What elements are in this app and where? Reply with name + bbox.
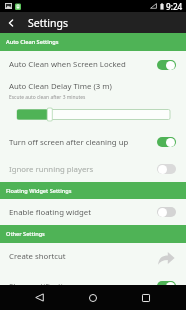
- button[interactable]: Create shortcut: [0, 243, 186, 269]
- staticText: Turn off screen after cleaning up: [9, 137, 153, 148]
- staticText: Auto Clean Delay Time (3 m): [9, 81, 112, 92]
- staticText: Ignore running players: [9, 164, 153, 175]
- button[interactable]: Home: [73, 285, 113, 310]
- button[interactable]: Show notification: [0, 273, 186, 299]
- button[interactable]: Enable floating widget: [0, 199, 186, 225]
- button[interactable]: Turn off screen after cleaning up: [0, 129, 186, 155]
- staticText: Create shortcut: [9, 251, 158, 262]
- button[interactable]: Auto Clean Delay Time (3 m): [0, 77, 186, 105]
- staticText: Enable floating widget: [9, 207, 153, 218]
- staticText: Auto Clean Settings: [6, 38, 59, 46]
- staticText: Floating Widget Settings: [6, 187, 72, 195]
- button[interactable]: Recent apps: [106, 285, 186, 310]
- button[interactable]: Ignore running players: [0, 156, 186, 182]
- button[interactable]: Navigate up: [0, 12, 22, 33]
- staticText: Show notification: [9, 281, 153, 292]
- staticText: Escute auto clean after 3 minutes: [9, 94, 86, 101]
- button[interactable]: Back: [0, 285, 78, 310]
- staticText: 9:24: [166, 1, 183, 12]
- staticText: Other Settings: [6, 230, 45, 238]
- button[interactable]: Auto Clean when Screen Locked: [0, 52, 186, 77]
- staticText: Auto Clean when Screen Locked: [9, 59, 153, 70]
- staticText: Settings: [28, 16, 68, 30]
- button[interactable]: Auto clean delay time slider: [0, 105, 186, 121]
